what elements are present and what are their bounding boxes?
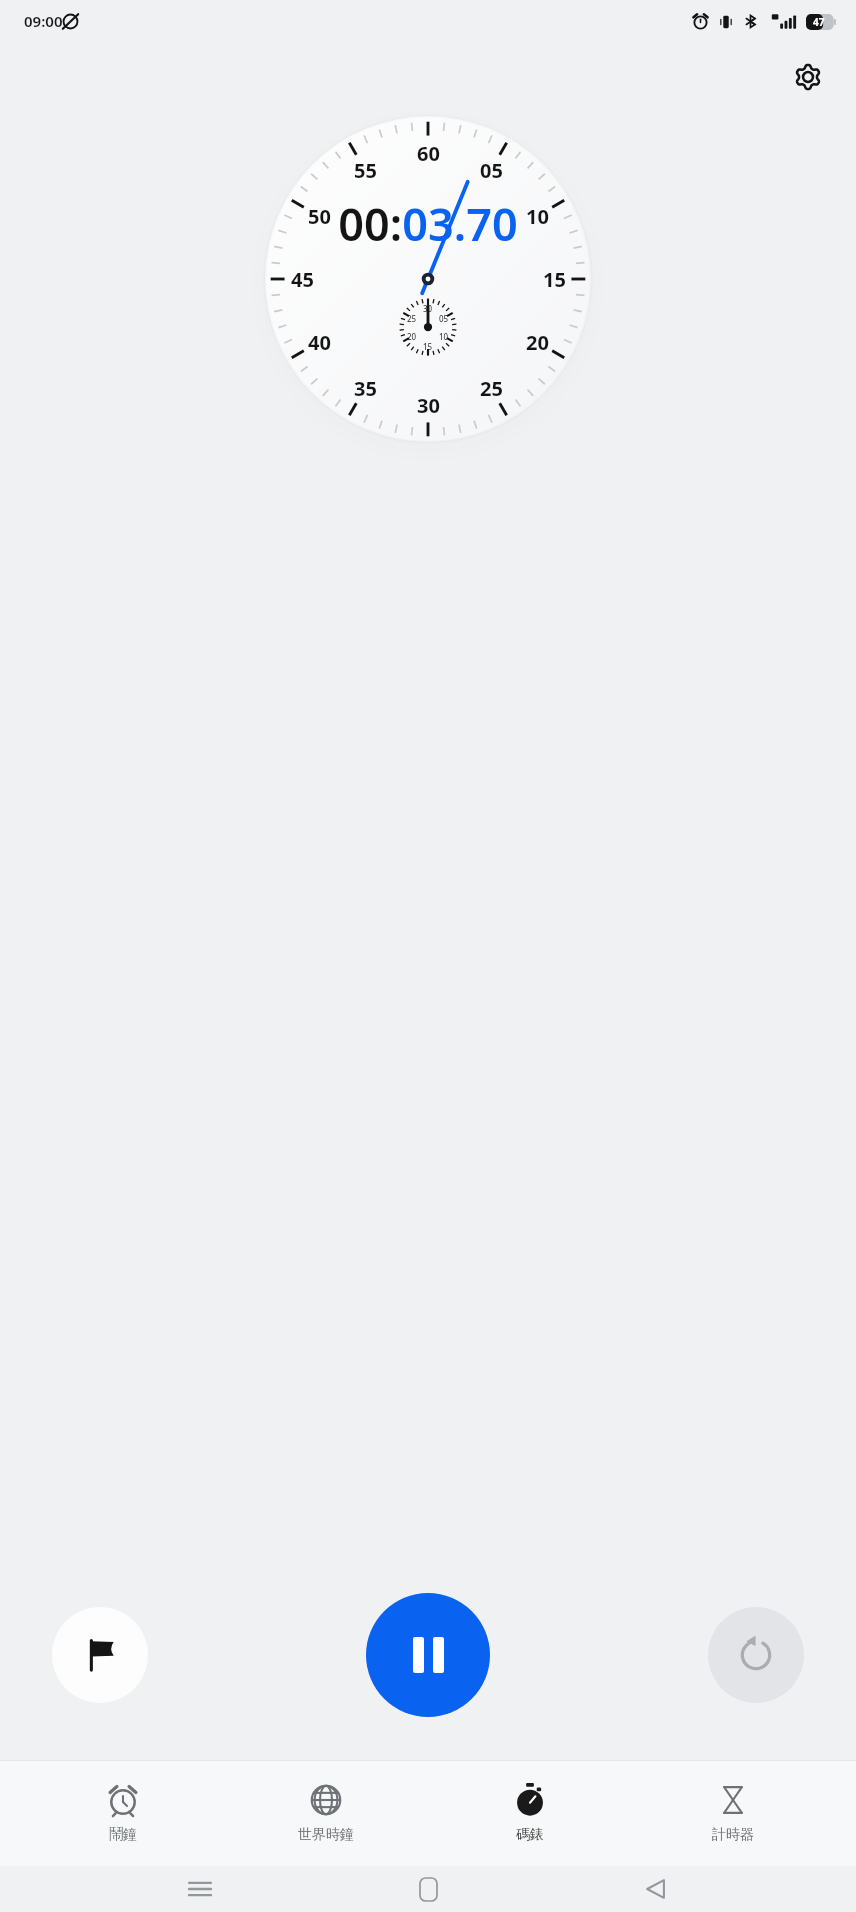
staticText: 05 (439, 313, 449, 324)
staticText: 35 (354, 375, 377, 402)
staticText: 20 (526, 329, 549, 356)
staticText: 30 (423, 303, 433, 314)
button[interactable]: Home (400, 1866, 456, 1912)
staticText: 40 (308, 329, 331, 356)
button[interactable]: 世界時鐘 (246, 1775, 406, 1852)
button[interactable]: Back (628, 1866, 684, 1912)
staticText: 15 (423, 341, 433, 352)
button[interactable]: 計時器 (653, 1775, 813, 1852)
staticText: 25 (407, 313, 417, 324)
staticText: 世界時鐘 (298, 1826, 354, 1844)
button[interactable]: Settings (784, 53, 832, 101)
button[interactable]: Pause (366, 1593, 490, 1717)
staticText: 60 (417, 140, 440, 167)
staticText: 47 (813, 15, 825, 29)
staticText: 計時器 (712, 1826, 754, 1844)
button[interactable]: 碼錶 (450, 1775, 610, 1852)
staticText: 25 (480, 375, 503, 402)
staticText: 45 (291, 266, 314, 293)
staticText: 30 (417, 392, 440, 419)
staticText: 15 (543, 266, 566, 293)
button[interactable]: Recents (172, 1866, 228, 1912)
staticText: 鬧鐘 (109, 1826, 137, 1844)
staticText: 10 (526, 203, 549, 230)
button[interactable]: Reset (708, 1607, 804, 1703)
staticText: 55 (354, 157, 377, 184)
staticText: 50 (308, 203, 331, 230)
staticText: 00:03.70 (338, 193, 518, 254)
staticText: 05 (480, 157, 503, 184)
staticText: 09:00 (24, 11, 63, 31)
staticText: 20 (407, 331, 417, 342)
staticText: 碼錶 (516, 1826, 544, 1844)
button[interactable]: Lap (52, 1607, 148, 1703)
staticText: 10 (439, 331, 449, 342)
button[interactable]: 鬧鐘 (43, 1775, 203, 1852)
